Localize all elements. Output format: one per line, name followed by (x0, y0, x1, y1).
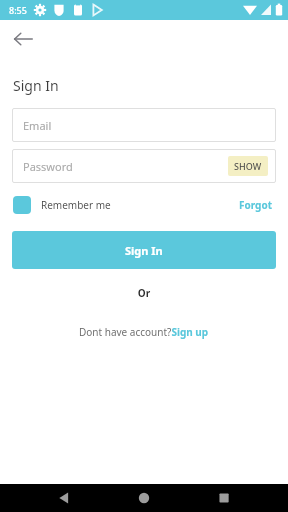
button[interactable]: Forgot (237, 196, 275, 214)
staticText: Email (23, 118, 52, 133)
staticText: Or (0, 286, 288, 300)
staticText: Password (23, 159, 73, 174)
staticText: Forgot (239, 198, 273, 212)
button[interactable]: Back (6, 22, 40, 56)
button[interactable]: Password (12, 149, 276, 183)
button[interactable]: Remember me (13, 196, 111, 214)
button[interactable]: Sign In (12, 231, 276, 269)
button[interactable]: SHOW (228, 156, 268, 176)
button[interactable]: Dont have account?Sign up (79, 325, 209, 339)
staticText: Sign In (13, 76, 59, 95)
staticText: 8:55 (9, 4, 27, 16)
button[interactable]: Email (12, 108, 276, 142)
staticText: Dont have account?Sign up (79, 325, 209, 339)
staticText: Remember me (41, 198, 111, 212)
staticText: Sign In (125, 243, 163, 258)
staticText: SHOW (234, 160, 262, 172)
